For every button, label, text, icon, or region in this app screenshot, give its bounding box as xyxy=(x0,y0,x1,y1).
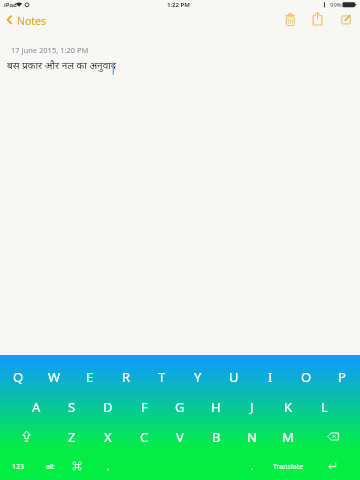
staticText: L xyxy=(321,398,328,416)
staticText: U xyxy=(229,368,239,386)
staticText: B xyxy=(212,428,221,446)
staticText: 1:22 PM xyxy=(167,1,190,9)
staticText: G xyxy=(175,398,185,416)
staticText: S xyxy=(68,398,76,416)
staticText: E xyxy=(86,368,94,386)
staticText: I xyxy=(268,368,273,386)
staticText: M xyxy=(282,428,294,446)
staticText: O xyxy=(301,368,312,386)
staticText: H xyxy=(211,398,221,416)
staticText: F xyxy=(141,398,148,416)
staticText: R xyxy=(122,368,131,386)
staticText: A xyxy=(32,398,41,416)
staticText: D xyxy=(103,398,113,416)
staticText: X xyxy=(104,428,112,446)
staticText: Notes xyxy=(17,14,47,28)
staticText: K xyxy=(284,398,293,416)
staticText: J xyxy=(250,398,254,416)
staticText: P xyxy=(338,368,346,386)
staticText: Translate xyxy=(273,462,304,472)
staticText: 123 xyxy=(12,462,25,472)
staticText: Y xyxy=(194,368,202,386)
staticText: V xyxy=(176,428,184,446)
staticText: Z xyxy=(68,428,76,446)
staticText: N xyxy=(247,428,257,446)
staticText: , xyxy=(107,461,110,472)
staticText: 99% xyxy=(330,1,342,9)
staticText: W xyxy=(48,368,61,386)
staticText: बस प्रकार और नल का अनुवाद xyxy=(7,58,117,72)
staticText: C xyxy=(140,428,149,446)
staticText: T xyxy=(158,368,166,386)
staticText: alt xyxy=(46,462,55,472)
staticText: Q xyxy=(13,368,24,386)
staticText: . xyxy=(251,461,254,472)
staticText: 17 June 2015, 1:20 PM xyxy=(11,45,89,55)
staticText: iPad xyxy=(4,1,17,9)
